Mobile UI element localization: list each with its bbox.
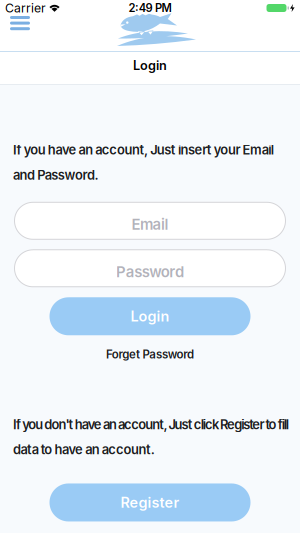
staticText: Forget Password — [106, 347, 194, 361]
staticText: Register — [120, 494, 179, 511]
button[interactable]: Login — [49, 297, 250, 335]
staticText: Password — [116, 263, 184, 281]
button[interactable]: Forget Password — [106, 335, 194, 361]
staticText: Login — [133, 58, 167, 73]
staticText: Email — [131, 215, 169, 233]
staticText: data to have an account. — [13, 442, 155, 457]
button[interactable]: Password — [14, 249, 286, 287]
staticText: If you have an account, Just insert your… — [13, 142, 274, 158]
button[interactable]: Register — [49, 483, 250, 521]
staticText: Carrier — [5, 1, 46, 15]
staticText: and Password. — [13, 167, 99, 183]
button[interactable]: Menu — [0, 16, 38, 34]
button[interactable]: Email — [14, 202, 286, 240]
staticText: Login — [130, 308, 169, 325]
staticText: If you don't have an account, Just click… — [13, 417, 289, 432]
staticText: 2:49 PM — [128, 1, 172, 15]
